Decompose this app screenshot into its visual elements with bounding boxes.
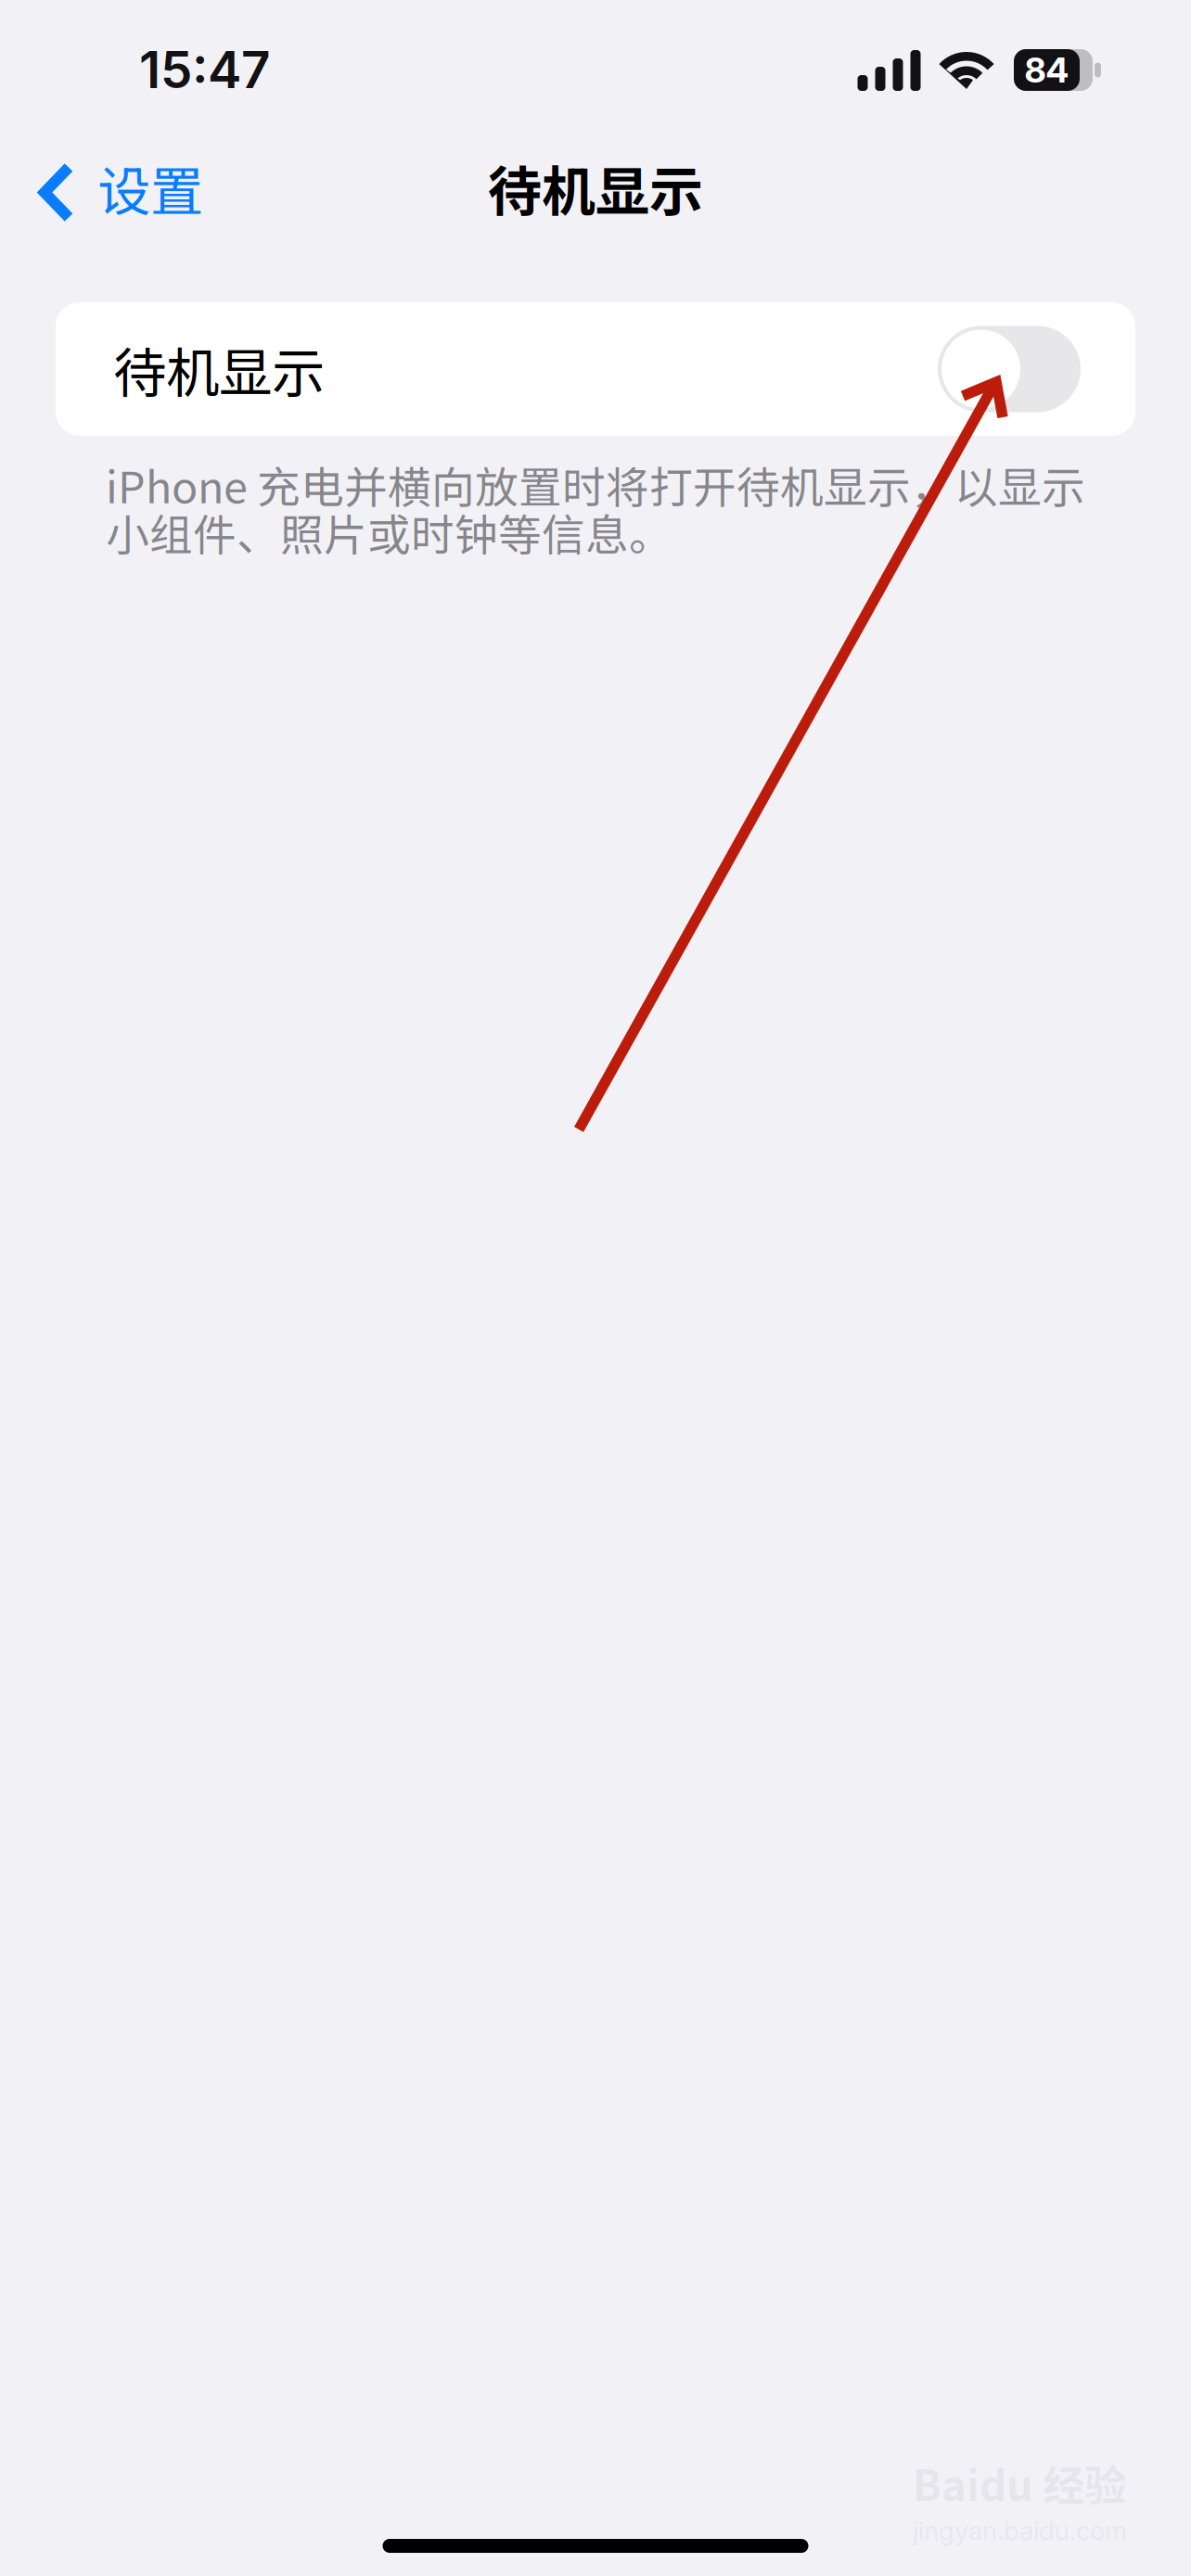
staticText: 设置 bbox=[97, 149, 203, 226]
staticText: Baidu 经验 bbox=[913, 2452, 1126, 2513]
button[interactable]: 待机显示 bbox=[56, 302, 1135, 436]
staticText: 待机显示 bbox=[488, 149, 703, 227]
staticText: jingyan.baidu.com bbox=[913, 2515, 1127, 2546]
staticText: 15:47 bbox=[139, 39, 270, 100]
button[interactable]: 返回设置 bbox=[0, 122, 231, 253]
staticText: 84 bbox=[1025, 49, 1069, 91]
staticText: 待机显示 bbox=[113, 331, 325, 408]
staticText: iPhone 充电并横向放置时将打开待机显示，以显示小组件、照片或时钟等信息。 bbox=[106, 461, 1085, 555]
